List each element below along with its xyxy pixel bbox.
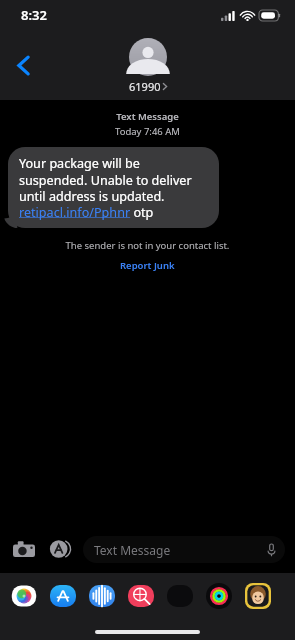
staticText: Today 7:46 AM: [0, 125, 295, 138]
staticText: Report Junk: [120, 259, 175, 272]
staticText: Text Message: [0, 110, 295, 123]
staticText: Text Message: [94, 542, 171, 558]
button[interactable]: Your package will be suspended. Unable t…: [8, 147, 219, 228]
staticText: The sender is not in your contact list.: [0, 239, 295, 252]
staticText: 8:32: [21, 6, 47, 24]
button[interactable]: 61990: [129, 38, 167, 94]
button[interactable]: Camera: [10, 535, 38, 563]
staticText: Your package will be suspended. Unable t…: [19, 155, 208, 220]
button[interactable]: Back: [6, 48, 40, 82]
button[interactable]: Apple Cash: [166, 582, 194, 610]
button[interactable]: Report Junk: [112, 257, 183, 274]
button[interactable]: Audio: [88, 582, 116, 610]
button[interactable]: Memoji: [244, 582, 272, 610]
button[interactable]: Text Message: [83, 536, 285, 563]
button[interactable]: Fitness: [205, 582, 233, 610]
button[interactable]: Images: [127, 582, 155, 610]
button[interactable]: Apps: [46, 535, 74, 563]
staticText: 61990: [129, 79, 161, 94]
button[interactable]: Photos: [10, 582, 38, 610]
button[interactable]: App Store: [49, 582, 77, 610]
